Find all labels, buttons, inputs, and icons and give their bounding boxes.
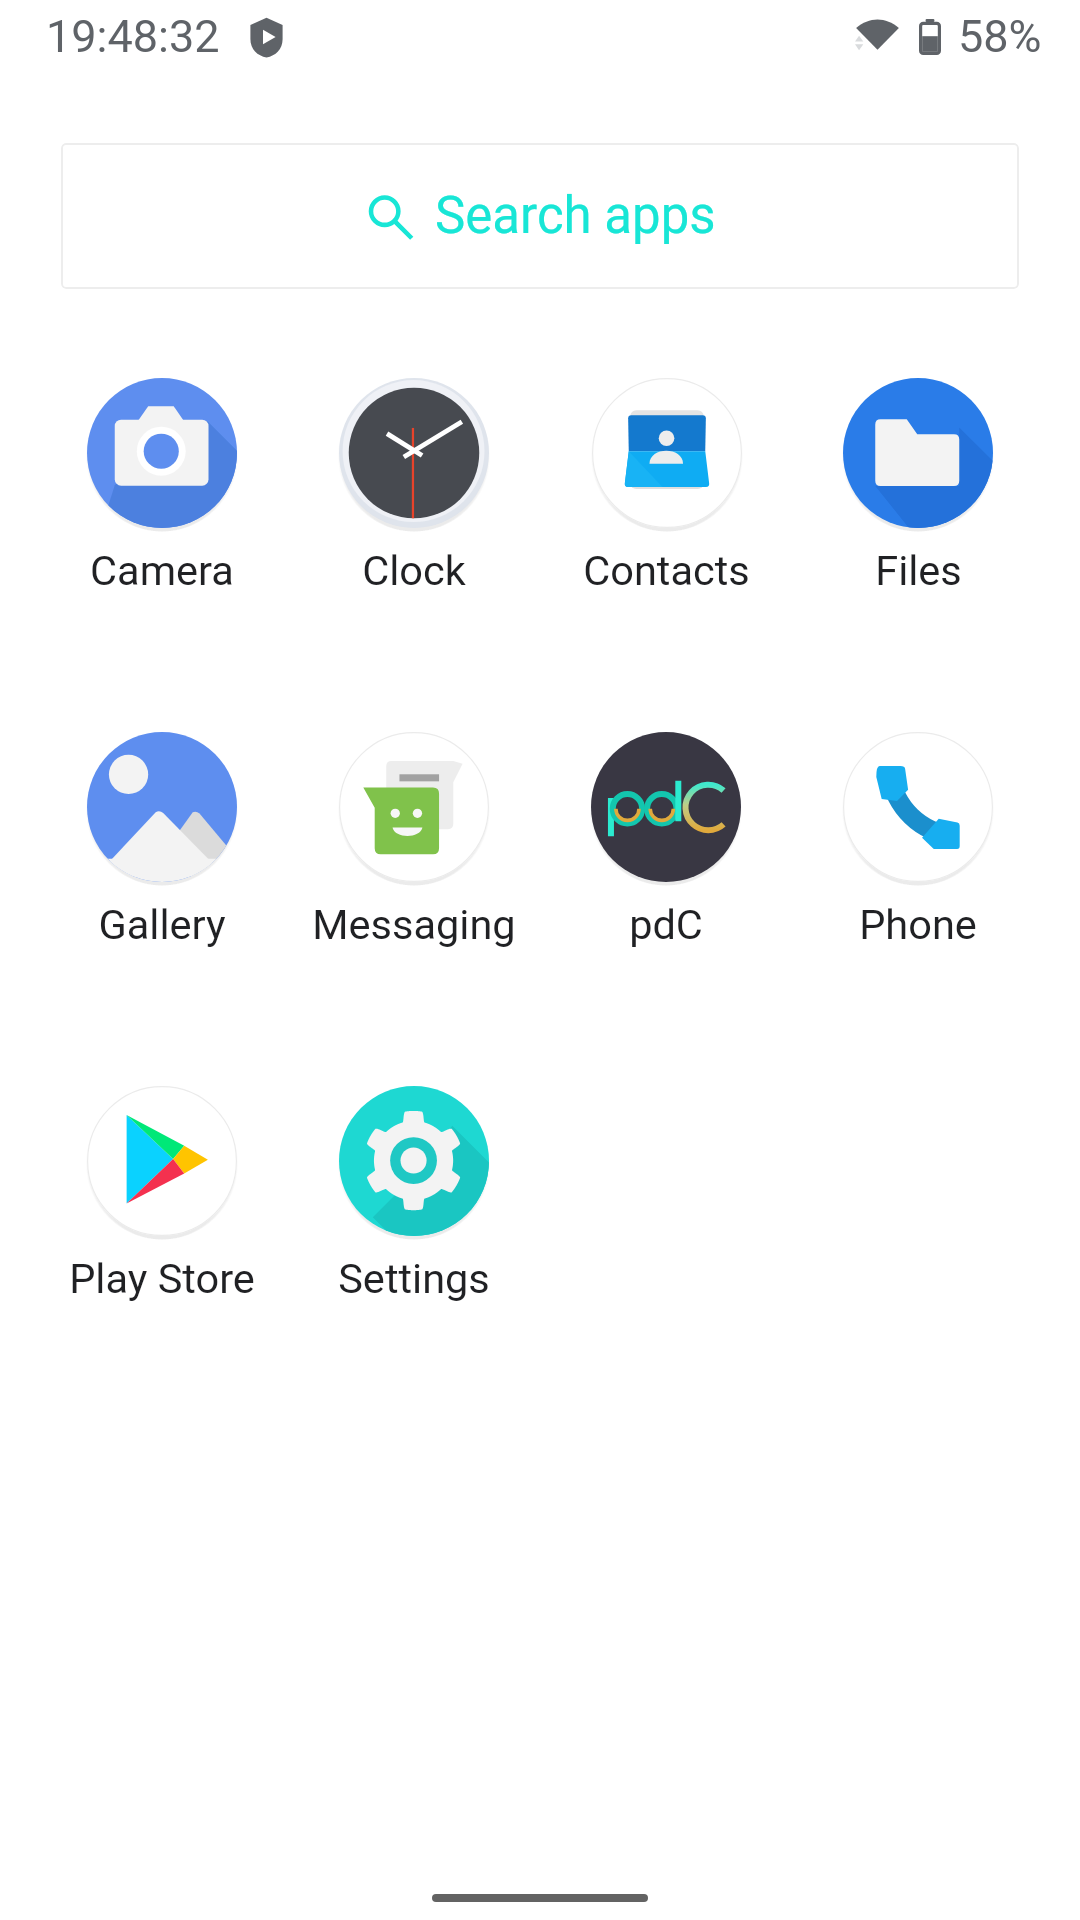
staticText: Play Store (69, 1254, 255, 1303)
staticText: Messaging (312, 900, 516, 949)
button[interactable]: Gallery (36, 708, 288, 958)
staticText: 58% (958, 10, 1042, 63)
button[interactable]: Messaging (288, 708, 540, 958)
button[interactable]: Files (792, 354, 1044, 604)
button[interactable]: Clock (288, 354, 540, 604)
staticText: Camera (90, 546, 234, 595)
button[interactable]: Play Store (36, 1062, 288, 1312)
staticText: Search apps (435, 186, 716, 246)
staticText: Contacts (583, 546, 750, 595)
staticText: Settings (338, 1254, 490, 1303)
button[interactable]: Camera (36, 354, 288, 604)
button[interactable]: Settings (288, 1062, 540, 1312)
button[interactable]: Search apps (61, 143, 1019, 289)
staticText: Files (875, 546, 962, 595)
button[interactable]: Home (432, 1894, 648, 1902)
staticText: 19:48:32 (46, 10, 220, 63)
staticText: Phone (859, 900, 977, 949)
button[interactable]: pdC (540, 708, 792, 958)
button[interactable]: Phone (792, 708, 1044, 958)
button[interactable]: Contacts (540, 354, 792, 604)
staticText: Gallery (98, 900, 226, 949)
staticText: Clock (362, 546, 466, 595)
staticText: pdC (629, 900, 703, 949)
